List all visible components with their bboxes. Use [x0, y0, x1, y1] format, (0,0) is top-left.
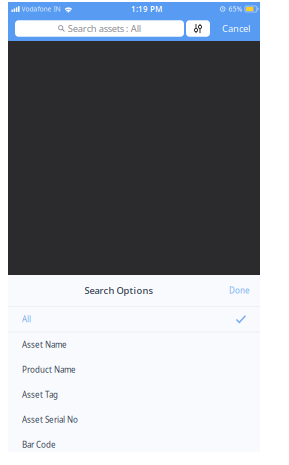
- staticText: Asset Name: [22, 339, 67, 350]
- staticText: Search Options: [84, 284, 153, 297]
- button[interactable]: Cancel: [210, 18, 262, 38]
- button[interactable]: All: [8, 307, 260, 332]
- staticText: Search assets : All: [68, 22, 141, 35]
- staticText: 1:19 PM: [131, 4, 162, 14]
- button[interactable]: Bar Code: [8, 432, 260, 457]
- staticText: Product Name: [22, 364, 76, 375]
- button[interactable]: Asset Serial No: [8, 407, 260, 432]
- staticText: Asset Tag: [22, 389, 58, 400]
- staticText: All: [22, 314, 31, 324]
- staticText: Bar Code: [22, 439, 56, 450]
- staticText: Cancel: [222, 22, 250, 35]
- button[interactable]: Asset Name: [8, 332, 260, 357]
- staticText: Done: [229, 285, 250, 296]
- button[interactable]: Filter search options: [186, 20, 210, 37]
- button[interactable]: Product Name: [8, 357, 260, 382]
- button[interactable]: Search assets : All: [15, 20, 184, 37]
- staticText: Asset Serial No: [22, 414, 78, 425]
- staticText: Vodafone IN: [21, 5, 60, 13]
- button[interactable]: Done: [216, 285, 250, 296]
- button[interactable]: Asset Tag: [8, 382, 260, 407]
- staticText: 65%: [228, 5, 242, 13]
